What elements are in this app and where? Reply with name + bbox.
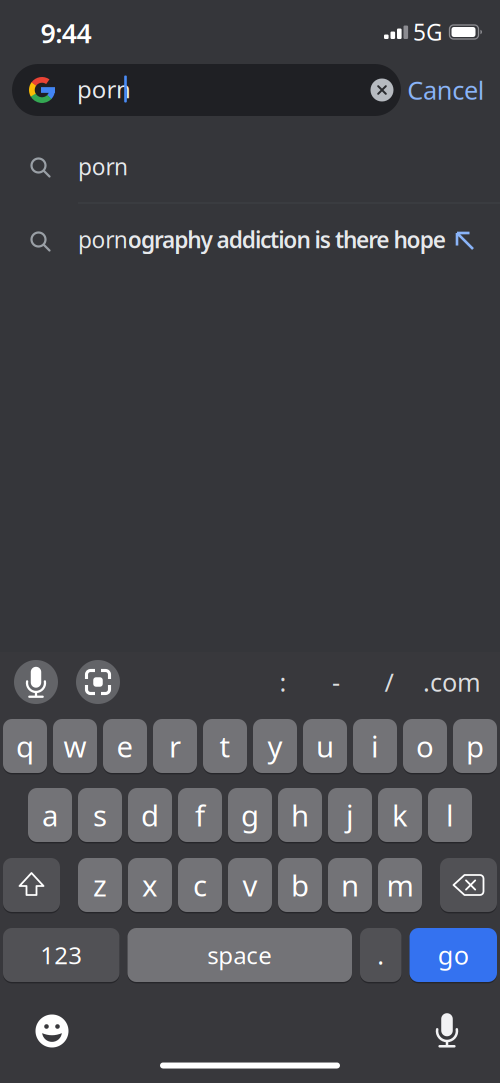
staticText: j — [346, 795, 354, 834]
button[interactable] — [0, 0, 500, 1083]
staticText: t — [219, 726, 230, 765]
button[interactable] — [0, 0, 500, 1083]
staticText: go — [438, 938, 469, 972]
staticText: m — [386, 865, 413, 904]
staticText: g — [241, 795, 259, 834]
button[interactable]: go — [409, 928, 497, 982]
button[interactable]: l — [428, 788, 472, 842]
staticText: porn — [78, 224, 128, 254]
staticText: i — [371, 726, 379, 765]
button[interactable]: - — [0, 0, 500, 1083]
button[interactable] — [0, 0, 500, 1083]
staticText: . — [377, 938, 384, 972]
staticText: 5G — [413, 17, 443, 47]
staticText: p — [466, 726, 484, 765]
button[interactable]: s — [78, 788, 122, 842]
button[interactable] — [0, 0, 500, 1083]
button[interactable]: d — [128, 788, 172, 842]
staticText: 9:44 — [40, 15, 91, 51]
staticText: y — [267, 726, 282, 765]
staticText: q — [16, 726, 34, 765]
button[interactable]: v — [228, 858, 272, 912]
staticText: v — [242, 865, 257, 904]
button[interactable]: n — [328, 858, 372, 912]
staticText: Cancel — [407, 73, 485, 107]
button[interactable]: .com — [0, 0, 500, 1083]
staticText: l — [446, 795, 454, 834]
button[interactable]: porn — [0, 0, 500, 1083]
staticText: porn — [77, 73, 131, 105]
button[interactable]: b — [278, 858, 322, 912]
button[interactable]: h — [278, 788, 322, 842]
staticText: e — [116, 726, 133, 765]
button[interactable]: t — [203, 719, 247, 773]
staticText: a — [42, 795, 58, 834]
staticText: d — [141, 795, 159, 834]
staticText: u — [316, 726, 334, 765]
button[interactable]: c — [178, 858, 222, 912]
button[interactable]: w — [53, 719, 97, 773]
button[interactable]: e — [103, 719, 147, 773]
staticText: n — [341, 865, 359, 904]
button[interactable]: k — [378, 788, 422, 842]
staticText: .com — [423, 665, 481, 699]
button[interactable]: y — [253, 719, 297, 773]
staticText: b — [291, 865, 309, 904]
staticText: c — [193, 865, 207, 904]
button[interactable]: a — [28, 788, 72, 842]
button[interactable]: i — [353, 719, 397, 773]
staticText: - — [332, 665, 340, 699]
button[interactable]: . — [360, 928, 401, 982]
button[interactable]: z — [78, 858, 122, 912]
staticText: ography addiction is there hope — [128, 224, 446, 254]
staticText: porn — [78, 151, 128, 181]
staticText: z — [93, 865, 107, 904]
button[interactable] — [0, 0, 500, 1083]
button[interactable]: porn — [0, 0, 500, 1083]
button[interactable]: m — [378, 858, 422, 912]
staticText: s — [93, 795, 107, 834]
button[interactable]: f — [178, 788, 222, 842]
button[interactable]: j — [328, 788, 372, 842]
button[interactable]: q — [3, 719, 47, 773]
staticText: f — [195, 795, 205, 834]
button[interactable]: : — [0, 0, 500, 1083]
staticText: space — [207, 939, 272, 971]
button[interactable]: space — [127, 928, 352, 982]
staticText: h — [291, 795, 309, 834]
button[interactable]: 123 — [3, 928, 119, 982]
button[interactable]: Cancel — [0, 0, 500, 1083]
staticText: o — [416, 726, 434, 765]
button[interactable]: o — [403, 719, 447, 773]
button[interactable]: r — [153, 719, 197, 773]
staticText: / — [384, 665, 393, 699]
button[interactable]: / — [0, 0, 500, 1083]
staticText: k — [392, 795, 408, 834]
button[interactable]: u — [303, 719, 347, 773]
staticText: w — [63, 726, 86, 765]
staticText: r — [169, 726, 181, 765]
button[interactable]: x — [128, 858, 172, 912]
button[interactable]: p — [453, 719, 497, 773]
button[interactable]: g — [228, 788, 272, 842]
staticText: x — [142, 865, 158, 904]
staticText: 123 — [40, 939, 82, 971]
button[interactable]: porn — [0, 0, 500, 1083]
button[interactable] — [0, 0, 500, 1083]
staticText: : — [279, 665, 286, 699]
